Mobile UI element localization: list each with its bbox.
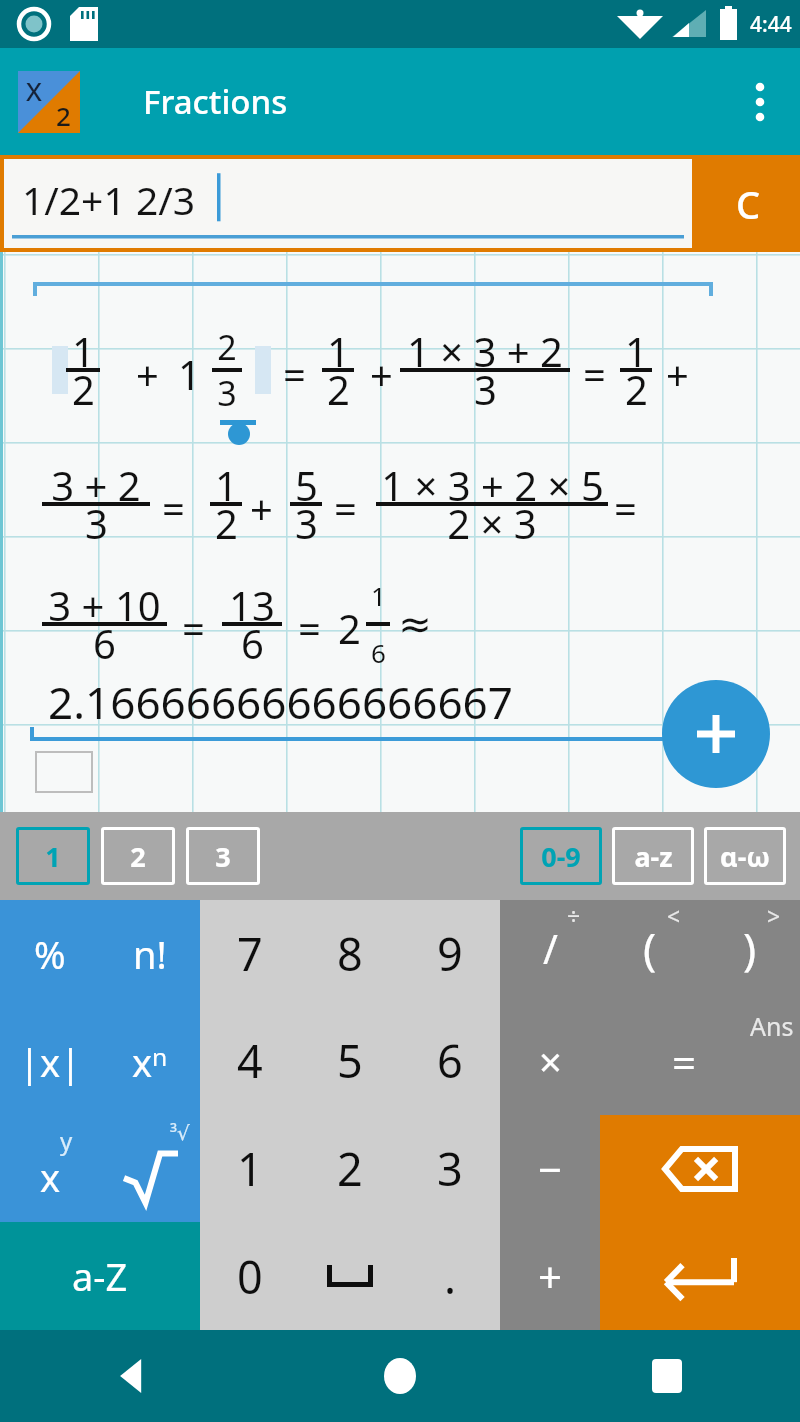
button[interactable]: x [0, 1115, 100, 1222]
button[interactable]: ) [700, 900, 800, 1007]
staticText: |x| [19, 1036, 81, 1088]
staticText: α-ω [720, 838, 770, 875]
button[interactable]: − [500, 1115, 600, 1222]
button[interactable]: 3 [400, 1114, 500, 1222]
staticText: 2 [338, 601, 361, 655]
button[interactable]: 7 [200, 900, 300, 1007]
staticText: ( [643, 918, 657, 978]
staticText: 0 [237, 1246, 263, 1307]
button[interactable]: 6 [400, 1007, 500, 1114]
staticText: 4:44 [750, 10, 792, 39]
staticText: 2 [625, 362, 648, 416]
staticText: 3 [217, 370, 237, 416]
staticText: Ans [750, 1009, 794, 1043]
staticText: a-Z [72, 1250, 128, 1302]
staticText: 1 × 3 + 2 [407, 324, 563, 378]
staticText: xⁿ [132, 1036, 168, 1088]
button[interactable]: Space [300, 1222, 400, 1330]
staticText: 2 [337, 1138, 363, 1199]
button[interactable]: Back [0, 1330, 266, 1422]
staticText: 1 [237, 1138, 263, 1199]
button[interactable]: 4 [200, 1007, 300, 1114]
button[interactable]: Cube root [100, 1115, 200, 1222]
staticText: 7 [237, 923, 263, 984]
staticText: 5 [337, 1030, 363, 1091]
button[interactable]: 8 [300, 900, 400, 1007]
staticText: 2 [327, 362, 350, 416]
staticText: 2.16666666666666667 [48, 672, 513, 732]
button[interactable]: Home [267, 1330, 533, 1422]
staticText: 3 + 2 [51, 458, 141, 512]
button[interactable]: + [500, 1222, 600, 1330]
button[interactable]: α-ω [704, 827, 786, 885]
staticText: 1 [72, 324, 95, 378]
staticText: 3 [85, 496, 108, 550]
button[interactable]: × [500, 1007, 600, 1115]
button[interactable]: App icon [18, 71, 80, 133]
button[interactable]: ( [600, 900, 700, 1007]
button[interactable]: Add [662, 680, 770, 788]
button[interactable]: 2 [101, 827, 175, 885]
staticText: 9 [437, 923, 463, 984]
staticText: 1 [327, 324, 350, 378]
button[interactable]: % [0, 900, 100, 1008]
staticText: y [60, 1124, 73, 1157]
staticText: 8 [337, 923, 363, 984]
button[interactable]: 2 [300, 1114, 400, 1222]
staticText: + [250, 481, 273, 535]
staticText: = [283, 347, 306, 401]
button[interactable]: xⁿ [100, 1008, 200, 1115]
staticText: 3 [215, 838, 231, 875]
button[interactable]: 1/2+1 2/3 [4, 159, 692, 248]
staticText: / [543, 921, 558, 975]
staticText: 2 [217, 324, 237, 370]
button[interactable]: Ans [600, 1007, 800, 1115]
staticText: X [26, 73, 42, 108]
staticText: = [182, 601, 205, 655]
staticText: 0-9 [541, 838, 581, 875]
staticText: a-z [634, 838, 673, 875]
staticText: + [666, 347, 689, 401]
button[interactable]: C [696, 155, 800, 252]
staticText: 1 [178, 347, 201, 401]
button[interactable]: a-z [612, 827, 694, 885]
button[interactable]: 5 [300, 1007, 400, 1114]
button[interactable]: / [500, 900, 600, 1007]
staticText: 3 + 10 [48, 578, 161, 632]
button[interactable]: 3 [186, 827, 260, 885]
button[interactable]: Enter [600, 1222, 800, 1330]
button[interactable]: 1 [200, 1114, 300, 1222]
staticText: 2 × 3 [447, 496, 537, 550]
staticText: 2 [215, 496, 238, 550]
staticText: 3 [474, 362, 497, 416]
staticText: 2 [72, 362, 95, 416]
button[interactable]: 1 [16, 827, 90, 885]
staticText: > [767, 900, 781, 931]
staticText: C [736, 178, 761, 230]
staticText: 3 [437, 1138, 463, 1199]
button[interactable]: 0 [200, 1222, 300, 1330]
staticText: 3 [295, 496, 318, 550]
button[interactable]: n! [100, 900, 200, 1008]
button[interactable]: Backspace [600, 1115, 800, 1222]
staticText: = [614, 481, 637, 535]
staticText: 4 [237, 1030, 263, 1091]
button[interactable]: a-Z [0, 1222, 200, 1330]
staticText: 1 [371, 578, 386, 613]
button[interactable]: More options [732, 74, 788, 130]
staticText: 2 [130, 838, 146, 875]
staticText: = [162, 481, 185, 535]
staticText: 2 [56, 98, 71, 133]
staticText: 1/2+1 2/3 [22, 173, 196, 226]
staticText: + [370, 347, 393, 401]
staticText: x [40, 1151, 61, 1203]
button[interactable]: . [400, 1222, 500, 1330]
button[interactable]: 9 [400, 900, 500, 1007]
staticText: = [672, 1033, 697, 1090]
staticText: % [34, 928, 66, 980]
staticText: = [334, 481, 357, 535]
button[interactable]: |x| [0, 1008, 100, 1115]
button[interactable]: 0-9 [520, 827, 602, 885]
button[interactable]: Recent apps [534, 1330, 800, 1422]
staticText: < [667, 900, 681, 931]
